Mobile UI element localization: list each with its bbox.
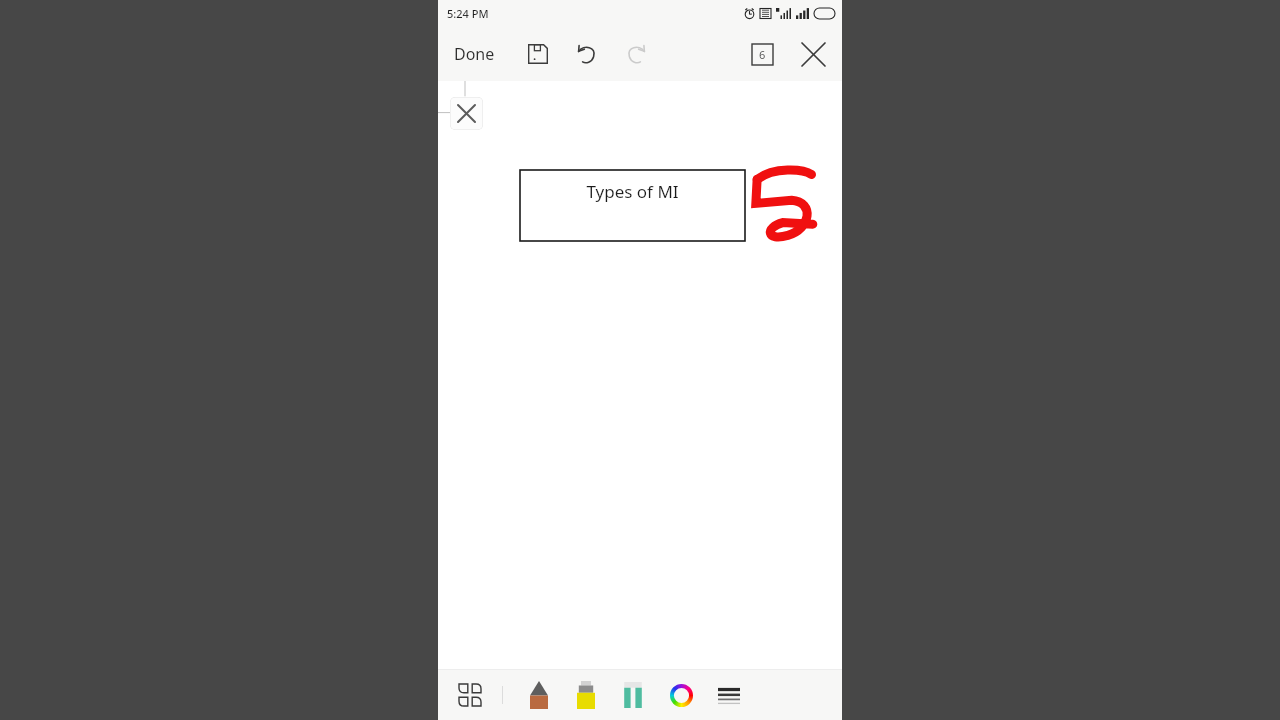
button[interactable]: Undo <box>570 37 604 71</box>
button[interactable]: Delete selection <box>450 97 483 130</box>
staticText: 5:24 PM <box>447 6 489 21</box>
button[interactable]: Stroke width <box>710 676 748 714</box>
button[interactable]: Pen <box>520 676 558 714</box>
button[interactable]: Eraser <box>614 676 652 714</box>
button[interactable]: Redo <box>619 37 653 71</box>
button[interactable]: Highlighter <box>567 676 605 714</box>
button[interactable]: Done <box>452 37 497 71</box>
button[interactable]: Save <box>521 37 555 71</box>
button[interactable]: Color <box>662 676 700 714</box>
button[interactable]: Page 6 <box>745 37 779 71</box>
button[interactable]: Close <box>796 37 830 71</box>
button[interactable]: Tools <box>452 677 488 713</box>
staticText: Done <box>454 43 495 65</box>
staticText: 6 <box>759 47 766 62</box>
button[interactable]: Types of MI <box>520 170 745 241</box>
staticText: Types of MI <box>586 180 679 203</box>
